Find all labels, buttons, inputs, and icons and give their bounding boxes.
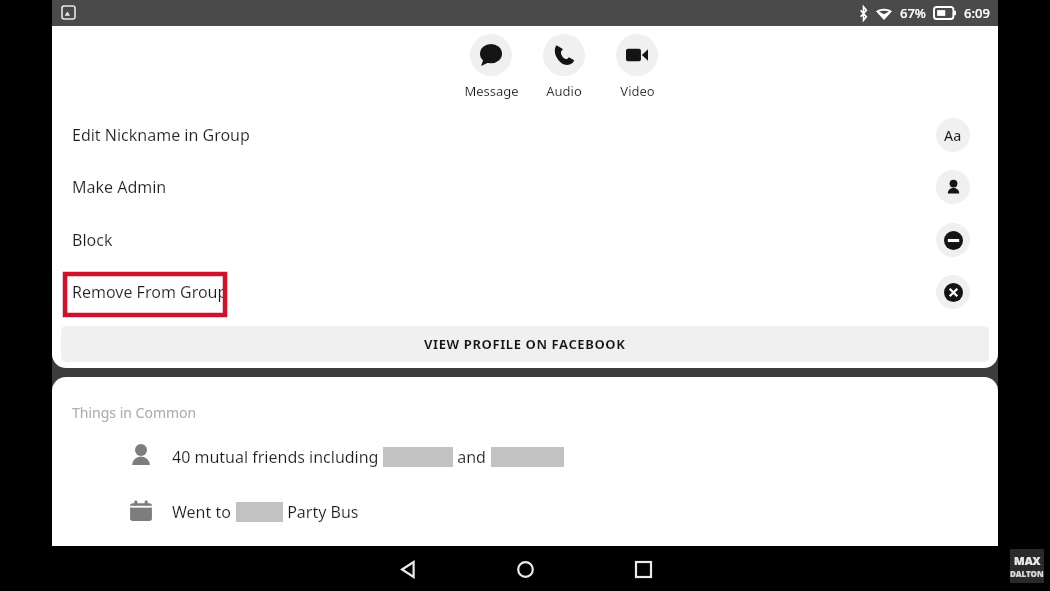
button[interactable]: Audio [524,34,604,100]
button[interactable]: Remove From Group [52,266,998,318]
button[interactable]: Video [597,34,677,100]
button[interactable]: Make Admin [52,161,998,213]
staticText: and [453,446,491,468]
staticText: Remove From Group [72,281,228,303]
staticText: Message [464,82,519,100]
staticText: Block [72,229,113,251]
staticText: Aa [944,126,962,145]
button[interactable]: Block [52,214,998,266]
button[interactable]: Home [503,547,547,591]
button[interactable]: Edit Nickname in Group [52,109,998,161]
staticText: 40 mutual friends including [172,446,383,468]
staticText: Party Bus [283,501,359,523]
button[interactable]: Message [451,34,531,100]
staticText: 67% [900,4,926,22]
button[interactable]: Back [385,547,429,591]
staticText: 6:09 [964,4,990,22]
staticText: Video [620,82,655,100]
staticText: MAX [1014,553,1041,568]
staticText: Things in Common [72,403,197,422]
staticText: Audio [546,82,582,100]
staticText: VIEW PROFILE ON FACEBOOK [424,335,626,353]
staticText: Edit Nickname in Group [72,124,250,146]
staticText: DALTON [1010,568,1044,579]
staticText: Went to [172,501,236,523]
button[interactable]: Recent apps [621,547,665,591]
staticText: Make Admin [72,176,167,198]
button[interactable]: VIEW PROFILE ON FACEBOOK [61,326,989,362]
